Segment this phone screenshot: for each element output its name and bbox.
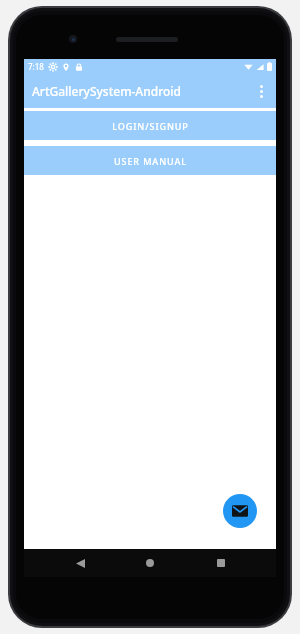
button[interactable]: USER MANUAL [24, 146, 276, 175]
staticText: ArtGallerySystem-Android [32, 83, 182, 99]
button[interactable]: Back [65, 549, 95, 577]
button[interactable]: Home [135, 549, 165, 577]
button[interactable]: LOGIN/SIGNUP [24, 111, 276, 140]
staticText: 7:18 [28, 61, 44, 72]
staticText: USER MANUAL [114, 155, 187, 167]
button[interactable]: Recent apps [206, 549, 236, 577]
button[interactable]: More options [248, 78, 274, 104]
button[interactable]: Send message [223, 494, 257, 528]
staticText: LOGIN/SIGNUP [112, 120, 189, 132]
